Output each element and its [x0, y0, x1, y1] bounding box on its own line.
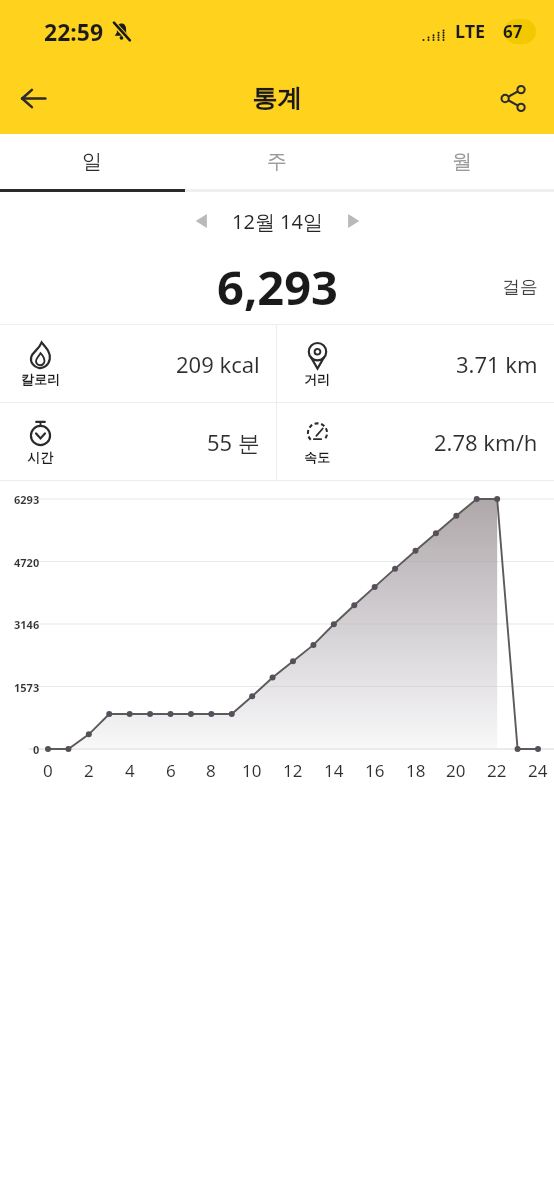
button[interactable]: Share — [488, 73, 538, 123]
staticText: 3.71 km — [456, 349, 538, 379]
staticText: 주 — [267, 149, 287, 174]
staticText: LTE — [455, 19, 486, 44]
staticText: 12월 14일 — [232, 208, 323, 235]
staticText: 16 — [365, 759, 385, 782]
staticText: 209 kcal — [176, 349, 260, 379]
staticText: 통계 — [252, 83, 302, 114]
staticText: 월 — [452, 149, 472, 174]
button[interactable]: 시간 — [0, 403, 276, 480]
staticText: 8 — [206, 759, 216, 782]
staticText: 20 — [446, 759, 466, 782]
staticText: 6,293 — [217, 255, 338, 319]
staticText: 6293 — [14, 492, 40, 507]
staticText: 6 — [166, 759, 176, 782]
staticText: 일 — [82, 149, 102, 174]
button[interactable]: 일 — [0, 134, 184, 189]
button[interactable]: 주 — [184, 134, 369, 189]
staticText: 4720 — [14, 555, 40, 570]
staticText: 속도 — [304, 449, 330, 465]
button[interactable]: Next day — [331, 198, 377, 244]
staticText: 시간 — [27, 449, 53, 465]
staticText: 2.78 km/h — [434, 427, 538, 457]
staticText: 18 — [406, 759, 426, 782]
staticText: 55 분 — [207, 427, 260, 457]
button[interactable]: 거리 — [277, 325, 554, 402]
staticText: 0 — [43, 759, 53, 782]
staticText: 22:59 — [44, 16, 104, 47]
staticText: 0 — [33, 742, 40, 757]
staticText: 걸음 — [502, 276, 538, 299]
staticText: 1573 — [14, 680, 40, 695]
staticText: 67 — [503, 20, 523, 43]
staticText: 4 — [125, 759, 135, 782]
staticText: 거리 — [304, 371, 330, 387]
button[interactable]: 칼로리 — [0, 325, 276, 402]
button[interactable]: Previous day — [178, 198, 224, 244]
staticText: 2 — [84, 759, 94, 782]
staticText: 3146 — [14, 617, 40, 632]
staticText: 14 — [324, 759, 344, 782]
staticText: 칼로리 — [21, 371, 60, 387]
button[interactable]: 월 — [369, 134, 554, 189]
staticText: 12 — [283, 759, 303, 782]
staticText: 10 — [242, 759, 262, 782]
button[interactable]: 속도 — [277, 403, 554, 480]
staticText: 22 — [487, 759, 507, 782]
button[interactable]: Back — [8, 73, 58, 123]
staticText: 24 — [528, 759, 548, 782]
